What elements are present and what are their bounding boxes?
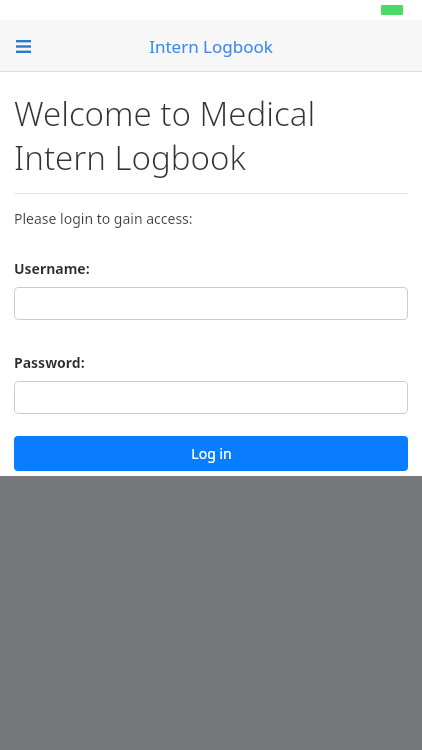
staticText: Username:	[14, 259, 90, 278]
staticText: Intern Logbook	[149, 35, 273, 58]
staticText: Log in	[191, 444, 232, 463]
button[interactable]: Log in	[14, 436, 408, 471]
button[interactable]	[14, 287, 408, 320]
staticText: Please login to gain access:	[14, 209, 193, 228]
button[interactable]: Menu	[8, 31, 38, 61]
button[interactable]	[14, 381, 408, 414]
staticText: Welcome to Medical Intern Logbook	[14, 91, 408, 179]
staticText: Password:	[14, 353, 85, 372]
